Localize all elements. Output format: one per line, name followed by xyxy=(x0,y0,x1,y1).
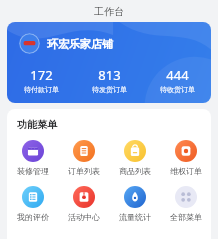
staticText: 流量统计 xyxy=(119,212,151,222)
button[interactable]: 444 xyxy=(143,66,211,94)
button[interactable]: 订单列表 xyxy=(58,140,109,176)
staticText: 环宏乐家店铺 xyxy=(47,37,113,51)
staticText: 全部菜单 xyxy=(170,212,202,222)
button[interactable]: 813 xyxy=(75,66,143,94)
button[interactable]: 我的评价 xyxy=(7,186,58,222)
staticText: 维权订单 xyxy=(170,166,202,176)
staticText: 待付款订单 xyxy=(24,85,59,94)
staticText: 订单列表 xyxy=(68,166,100,176)
staticText: 装修管理 xyxy=(17,166,49,176)
staticText: 功能菜单 xyxy=(17,118,57,131)
button[interactable]: 商品列表 xyxy=(109,140,160,176)
staticText: 商品列表 xyxy=(119,166,151,176)
button[interactable]: 活动中心 xyxy=(58,186,109,222)
button[interactable]: 全部菜单 xyxy=(160,186,211,222)
staticText: 活动中心 xyxy=(68,212,100,222)
staticText: 工作台 xyxy=(94,5,124,18)
staticText: 待发货订单 xyxy=(92,85,127,94)
button[interactable]: 装修管理 xyxy=(7,140,58,176)
button[interactable]: 维权订单 xyxy=(160,140,211,176)
staticText: 172 xyxy=(30,66,53,84)
button[interactable]: 环宏乐家店铺 xyxy=(19,33,113,54)
button[interactable]: 流量统计 xyxy=(109,186,160,222)
staticText: 444 xyxy=(166,66,189,84)
button[interactable]: 172 xyxy=(7,66,75,94)
staticText: 我的评价 xyxy=(17,212,49,222)
staticText: 待收货订单 xyxy=(160,85,195,94)
staticText: 813 xyxy=(98,66,121,84)
